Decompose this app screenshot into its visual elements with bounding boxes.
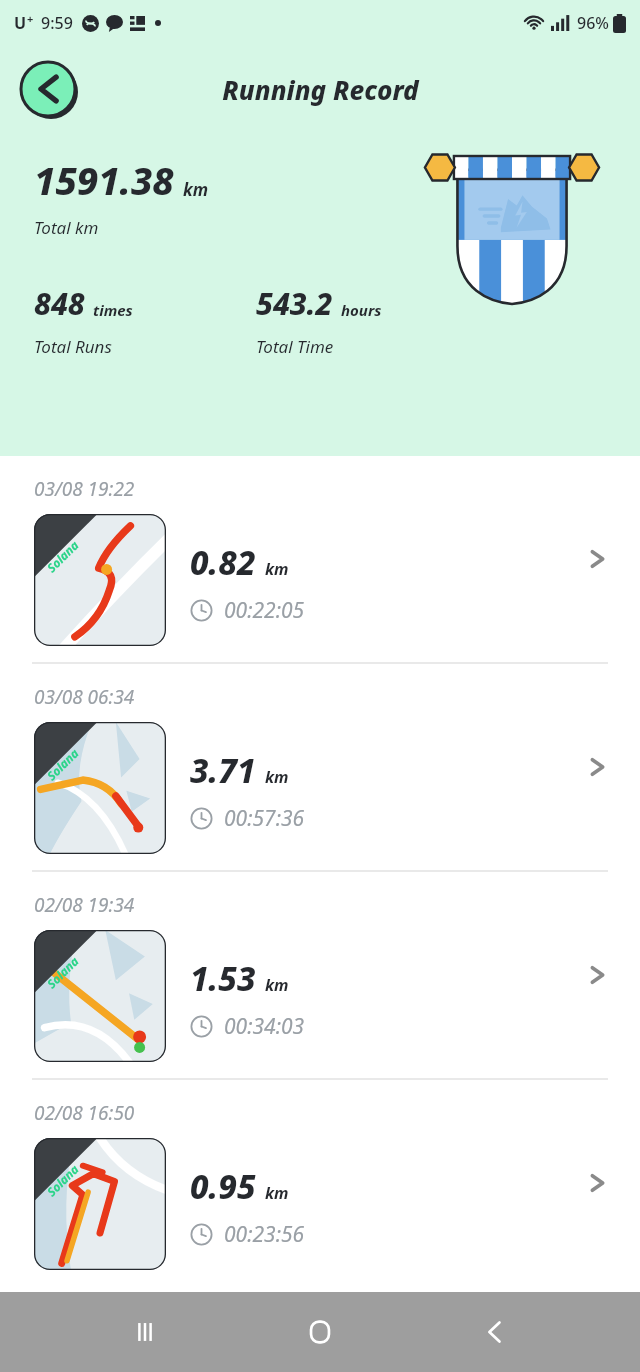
staticText: 02/08 16:50 [34, 1100, 135, 1126]
button[interactable]: Back [465, 1302, 525, 1362]
staticText: Total Time [256, 335, 334, 358]
staticText: + [27, 11, 34, 26]
staticText: U [14, 12, 27, 34]
button[interactable]: Back [17, 58, 79, 120]
staticText: Solana [43, 1161, 82, 1199]
staticText: 02/08 19:34 [34, 892, 135, 918]
button[interactable]: 03/08 06:34 [0, 664, 640, 870]
staticText: times [93, 300, 133, 320]
staticText: 00:22:05 [224, 596, 305, 625]
button[interactable]: 02/08 16:50 [0, 1080, 640, 1286]
staticText: km [265, 1182, 289, 1204]
staticText: Solana [43, 745, 82, 783]
staticText: 1591.38 [34, 154, 174, 206]
staticText: 3.71 [190, 748, 256, 793]
staticText: 00:34:03 [224, 1012, 305, 1041]
staticText: Solana [43, 537, 82, 575]
staticText: 848 [34, 283, 85, 324]
staticText: 03/08 06:34 [34, 684, 135, 710]
staticText: Total Runs [34, 335, 112, 358]
staticText: 1.53 [190, 956, 256, 1001]
staticText: 543.2 [256, 283, 333, 324]
staticText: km [183, 178, 209, 201]
button[interactable]: Recent apps [115, 1302, 175, 1362]
button[interactable]: Home [290, 1302, 350, 1362]
staticText: 9:59 [41, 12, 73, 34]
staticText: hours [341, 300, 382, 320]
staticText: 00:23:56 [224, 1220, 305, 1249]
staticText: km [265, 558, 289, 580]
staticText: 0.82 [190, 540, 256, 585]
staticText: Total km [34, 216, 99, 239]
staticText: 0.95 [190, 1164, 256, 1209]
staticText: km [265, 974, 289, 996]
staticText: 00:57:36 [224, 804, 305, 833]
button[interactable]: 03/08 19:22 [0, 456, 640, 662]
staticText: 03/08 19:22 [34, 476, 135, 502]
staticText: km [265, 766, 289, 788]
staticText: 96% [577, 12, 609, 34]
button[interactable]: 02/08 19:34 [0, 872, 640, 1078]
staticText: Solana [43, 953, 82, 991]
staticText: Running Record [222, 72, 419, 107]
